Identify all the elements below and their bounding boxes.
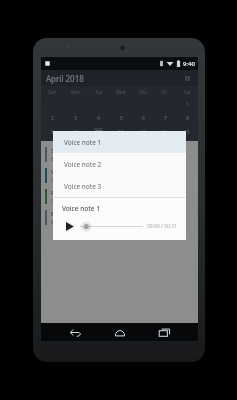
staticText: 1 [186, 101, 189, 108]
staticText: Voice note 2 [64, 160, 102, 169]
staticText: Evening walk [51, 210, 88, 218]
staticText: 11 [96, 129, 102, 136]
staticText: 3 [74, 115, 77, 122]
button[interactable]: Back [64, 323, 86, 341]
button[interactable]: 7 [154, 111, 176, 125]
staticText: Thu [139, 89, 148, 95]
staticText: Read the memos [51, 189, 99, 197]
staticText: 9:00 AM [51, 177, 70, 184]
staticText: Wed [116, 89, 126, 95]
button[interactable]: Home [109, 323, 131, 341]
staticText: Sun [48, 89, 57, 95]
button[interactable]: 5 [110, 111, 132, 125]
staticText: 2 [51, 115, 54, 122]
button[interactable]: 2 [41, 111, 64, 125]
staticText: 7 [164, 115, 167, 122]
button[interactable]: 13 [132, 125, 154, 139]
staticText: Sat [184, 89, 191, 95]
button[interactable]: 10 [64, 125, 87, 139]
button[interactable]: 12 [110, 125, 132, 139]
button[interactable]: Some text [41, 144, 198, 165]
button[interactable]: 15 [176, 125, 198, 139]
button[interactable]: Evening walk [41, 207, 198, 228]
staticText: Voice note 3 [64, 182, 102, 191]
staticText: 9 [51, 129, 54, 136]
staticText: 9:40 [183, 60, 195, 68]
button[interactable]: Recent apps [153, 323, 175, 341]
staticText: Voice note 1 [62, 204, 100, 213]
button[interactable]: Seek [80, 220, 143, 233]
staticText: 6 [142, 115, 145, 122]
button[interactable]: Voice note 1 [53, 131, 186, 153]
staticText: 6:00 PM [51, 219, 70, 226]
staticText: Some text [51, 147, 80, 155]
button[interactable]: 8 [176, 111, 198, 125]
button[interactable]: 11 [87, 125, 110, 139]
staticText: Tue [95, 89, 103, 95]
staticText: 8:00 AM [51, 156, 70, 163]
staticText: 4 [97, 115, 100, 122]
staticText: 13 [140, 129, 146, 136]
button[interactable]: Voice note 3 [53, 175, 186, 197]
staticText: April 2018 [46, 73, 84, 84]
staticText: 15 [184, 129, 190, 136]
button[interactable]: 9 [41, 125, 64, 139]
button[interactable]: Voice note 2 [53, 153, 186, 175]
staticText: Mon [71, 89, 81, 95]
button[interactable]: More options [182, 73, 193, 84]
button[interactable]: Play [62, 219, 76, 233]
button[interactable]: Read the memos [41, 186, 198, 207]
staticText: Voicenote in the park [51, 168, 111, 176]
staticText: 14 [162, 129, 168, 136]
staticText: Voice note 1 [64, 138, 102, 147]
button[interactable]: 1 [176, 97, 198, 111]
staticText: 00:06 / 00:31 [147, 223, 178, 230]
staticText: 11:30 AM [51, 198, 73, 205]
button[interactable]: 14 [154, 125, 176, 139]
staticText: 10 [73, 129, 79, 136]
button[interactable]: 4 [87, 111, 110, 125]
button[interactable]: 6 [132, 111, 154, 125]
staticText: 12 [118, 129, 124, 136]
staticText: 5 [120, 115, 123, 122]
button[interactable]: 3 [64, 111, 87, 125]
button[interactable]: Voicenote in the park [41, 165, 198, 186]
staticText: 8 [186, 115, 189, 122]
staticText: Fri [162, 89, 168, 95]
